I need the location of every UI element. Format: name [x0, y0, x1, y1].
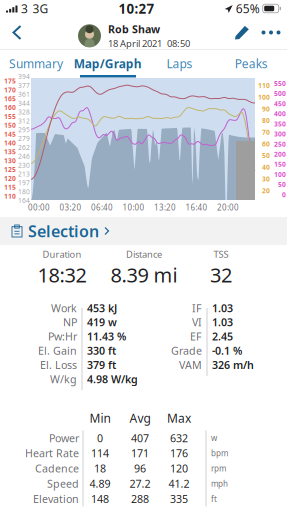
staticText: Summary — [9, 55, 63, 71]
staticText: 96 — [134, 461, 146, 475]
staticText: VI — [192, 315, 202, 329]
staticText: 100 — [258, 93, 270, 102]
staticText: 377 — [18, 81, 30, 90]
button[interactable]: Edit — [229, 17, 255, 48]
staticText: 164 — [18, 196, 30, 205]
staticText: 550 — [274, 79, 286, 88]
staticText: Min — [89, 410, 110, 426]
button[interactable]: More — [255, 17, 287, 48]
staticText: Selection — [28, 220, 99, 242]
button[interactable]: Map/Graph — [72, 52, 144, 75]
button[interactable]: Summary — [0, 52, 72, 75]
staticText: Speed — [47, 476, 79, 491]
staticText: 160 — [4, 103, 16, 112]
staticText: 288 — [131, 492, 149, 506]
staticText: ft — [211, 493, 217, 504]
staticText: 20:00 — [217, 202, 239, 213]
staticText: 145 — [4, 130, 16, 138]
staticText: 70 — [262, 128, 270, 137]
staticText: 4.89 — [89, 476, 110, 491]
staticText: IF — [192, 301, 202, 315]
staticText: 140 — [4, 138, 16, 147]
staticText: 60 — [262, 139, 270, 148]
staticText: 419 w — [87, 315, 117, 329]
staticText: 135 — [4, 147, 16, 156]
staticText: 180 — [18, 187, 30, 196]
button[interactable]: Back — [0, 17, 34, 48]
staticText: 197 — [18, 178, 30, 187]
staticText: 330 ft — [87, 343, 116, 358]
staticText: 114 — [91, 446, 109, 460]
staticText: 200 — [274, 150, 286, 159]
staticText: 155 — [4, 112, 16, 121]
staticText: Max — [167, 410, 191, 426]
staticText: 100 — [274, 170, 286, 179]
staticText: Laps — [166, 55, 192, 71]
staticText: 115 — [4, 183, 16, 192]
staticText: 262 — [18, 143, 30, 152]
staticText: 250 — [274, 140, 286, 148]
staticText: 326 m/h — [212, 358, 254, 372]
staticText: 27.2 — [129, 476, 150, 491]
staticText: 18 April 2021 — [108, 37, 162, 50]
button[interactable]: Laps — [143, 52, 215, 75]
staticText: 3G — [32, 0, 48, 16]
staticText: 18:32 — [37, 261, 86, 288]
staticText: 32 — [210, 261, 232, 288]
staticText: 344 — [18, 99, 30, 108]
staticText: -0.1 % — [212, 343, 242, 358]
staticText: 328 — [18, 107, 30, 116]
staticText: 65% — [236, 0, 260, 16]
button[interactable]: Selection — [0, 217, 287, 245]
staticText: 20 — [262, 186, 270, 195]
staticText: 165 — [4, 94, 16, 103]
staticText: 279 — [18, 134, 30, 143]
staticText: w — [211, 433, 217, 443]
staticText: Peaks — [235, 55, 268, 71]
staticText: 500 — [274, 89, 286, 98]
staticText: Power — [49, 431, 79, 445]
staticText: 0 — [97, 431, 103, 445]
staticText: 175 — [4, 76, 16, 85]
staticText: 16:40 — [185, 202, 207, 213]
staticText: Duration — [42, 248, 81, 260]
staticText: 06:40 — [91, 202, 113, 213]
staticText: 130 — [4, 156, 16, 165]
staticText: Elevation — [33, 492, 79, 506]
staticText: EF — [190, 329, 202, 343]
staticText: 110 — [258, 81, 270, 90]
staticText: 125 — [4, 165, 16, 174]
staticText: 632 — [170, 431, 188, 445]
staticText: 8.39 mi — [110, 261, 177, 288]
staticText: 213 — [18, 169, 30, 178]
staticText: TSS — [213, 248, 228, 260]
staticText: VAM — [179, 358, 202, 372]
staticText: 120 — [170, 461, 188, 475]
staticText: W/kg — [50, 372, 77, 386]
staticText: 1.03 — [212, 315, 233, 329]
button[interactable]: Peaks — [215, 52, 287, 75]
staticText: 110 — [4, 192, 16, 200]
staticText: 350 — [274, 119, 286, 128]
staticText: 00:00 — [28, 202, 50, 213]
staticText: 13:20 — [154, 202, 176, 213]
staticText: El. Loss — [40, 358, 77, 372]
staticText: Cadence — [35, 461, 79, 475]
staticText: 361 — [18, 90, 30, 99]
staticText: 230 — [18, 161, 30, 169]
staticText: 40 — [262, 163, 270, 172]
staticText: 407 — [131, 431, 149, 445]
staticText: mph — [211, 478, 228, 489]
staticText: 0 — [282, 190, 286, 199]
staticText: 379 ft — [87, 358, 116, 372]
staticText: 80 — [262, 116, 270, 125]
staticText: 171 — [131, 446, 149, 460]
staticText: Map/Graph — [74, 55, 142, 71]
staticText: Grade — [171, 343, 202, 358]
staticText: Heart Rate — [25, 446, 79, 460]
staticText: 90 — [262, 104, 270, 113]
staticText: 1.03 — [212, 301, 233, 315]
staticText: El. Gain — [38, 343, 77, 358]
staticText: 11.43 % — [87, 329, 126, 343]
staticText: 246 — [18, 152, 30, 161]
